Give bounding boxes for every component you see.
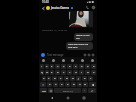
button[interactable]: English (US) [54,88,81,93]
staticText: V [67,83,69,86]
button[interactable]: Add attachment [41,53,45,57]
button[interactable]: I [79,70,84,75]
button[interactable]: C [59,82,64,87]
button[interactable]: 1 [40,64,44,69]
button[interactable]: A [42,76,46,81]
button[interactable]: Happy to see you when we stopped by [74,33,93,41]
button[interactable]: Recents [81,95,87,101]
staticText: D [54,77,56,80]
button[interactable]: Suggestion [70,58,75,63]
staticText: M [84,83,87,86]
button[interactable]: Suggestion [51,58,56,63]
button[interactable]: 3 [50,64,54,69]
button[interactable]: Y [67,70,72,75]
button[interactable]: H [70,76,75,81]
staticText: Jessica Owens [51,6,70,10]
button[interactable]: Z [47,82,52,87]
staticText: N [79,83,81,86]
button[interactable]: 9 [85,64,90,69]
button[interactable]: ?123 [40,88,47,93]
button[interactable]: 7 [73,64,78,69]
button[interactable]: . [82,88,87,93]
staticText: 5 [63,65,65,68]
staticText: 0 [93,65,95,68]
button[interactable]: Video call [91,5,96,10]
button[interactable]: Action [91,53,95,57]
button[interactable]: B [71,82,76,87]
button[interactable]: F [58,76,63,81]
staticText: 8 [81,65,83,68]
staticText: ?123 [42,90,46,92]
button[interactable]: Back [40,5,46,11]
staticText: Happy to see you when we stopped by [76,34,91,40]
button[interactable]: P [91,70,96,75]
staticText: T [63,71,65,74]
button[interactable]: Shift [40,82,46,87]
staticText: I [81,71,82,74]
button[interactable]: Action [87,53,91,57]
staticText: 10:30 [42,0,49,4]
button[interactable]: Enter [88,88,96,93]
button[interactable]: Suggestion [41,58,46,63]
button[interactable]: 2 [45,64,49,69]
staticText: O [87,71,89,74]
button[interactable]: 8 [79,64,84,69]
button[interactable]: Suggestion [61,58,66,63]
staticText: . [84,89,85,92]
button[interactable]: U [73,70,78,75]
staticText: 1 [41,65,43,68]
button[interactable]: W [45,70,49,75]
staticText: English (US) [63,90,73,92]
button[interactable]: R [55,70,60,75]
button[interactable]: E [50,70,54,75]
button[interactable]: X [53,82,58,87]
button[interactable]: K [82,76,87,81]
button[interactable]: O [85,70,90,75]
button[interactable]: 4 [55,64,60,69]
button[interactable]: M [83,82,88,87]
staticText: H [72,77,74,80]
button[interactable]: Suggestion [80,58,85,63]
button[interactable]: G [64,76,69,81]
staticText: 3 [51,65,53,68]
button[interactable]: N [77,82,82,87]
staticText: 4 [57,65,59,68]
staticText: C [61,83,63,86]
button[interactable]: Action [83,53,87,57]
button[interactable]: J [76,76,81,81]
staticText: September 19, 10:30 AM [42,29,68,32]
button[interactable]: Home [65,95,71,101]
staticText: U [75,71,77,74]
button[interactable]: V [65,82,70,87]
staticText: L [90,77,92,80]
button[interactable]: 0 [91,64,96,69]
button[interactable]: Mike said check out that long meeting at… [66,42,93,50]
button[interactable]: S [47,76,51,81]
staticText: 9 [87,65,89,68]
staticText: 6 [69,65,71,68]
button[interactable]: Emoji [48,88,53,93]
button[interactable]: Call [85,5,90,10]
button[interactable]: Backspace [89,82,96,87]
button[interactable]: T [61,70,66,75]
staticText: Q [41,71,43,74]
button[interactable]: Photo [69,11,93,28]
button[interactable]: Q [40,70,44,75]
staticText: Y [69,71,71,74]
button[interactable]: L [88,76,93,81]
staticText: Mike said check out that long meeting at… [68,43,91,49]
staticText: E [51,71,53,74]
button[interactable]: Suggestion [90,58,95,63]
staticText: F [60,77,62,80]
staticText: W [46,71,49,74]
button[interactable]: 6 [67,64,72,69]
staticText: X [55,83,57,86]
button[interactable]: Back [49,95,55,101]
staticText: B [73,83,75,86]
button[interactable]: D [52,76,57,81]
staticText: K [84,77,86,80]
button[interactable]: 5 [61,64,66,69]
staticText: G [66,77,68,80]
staticText: R [57,71,59,74]
staticText: A [43,77,45,80]
